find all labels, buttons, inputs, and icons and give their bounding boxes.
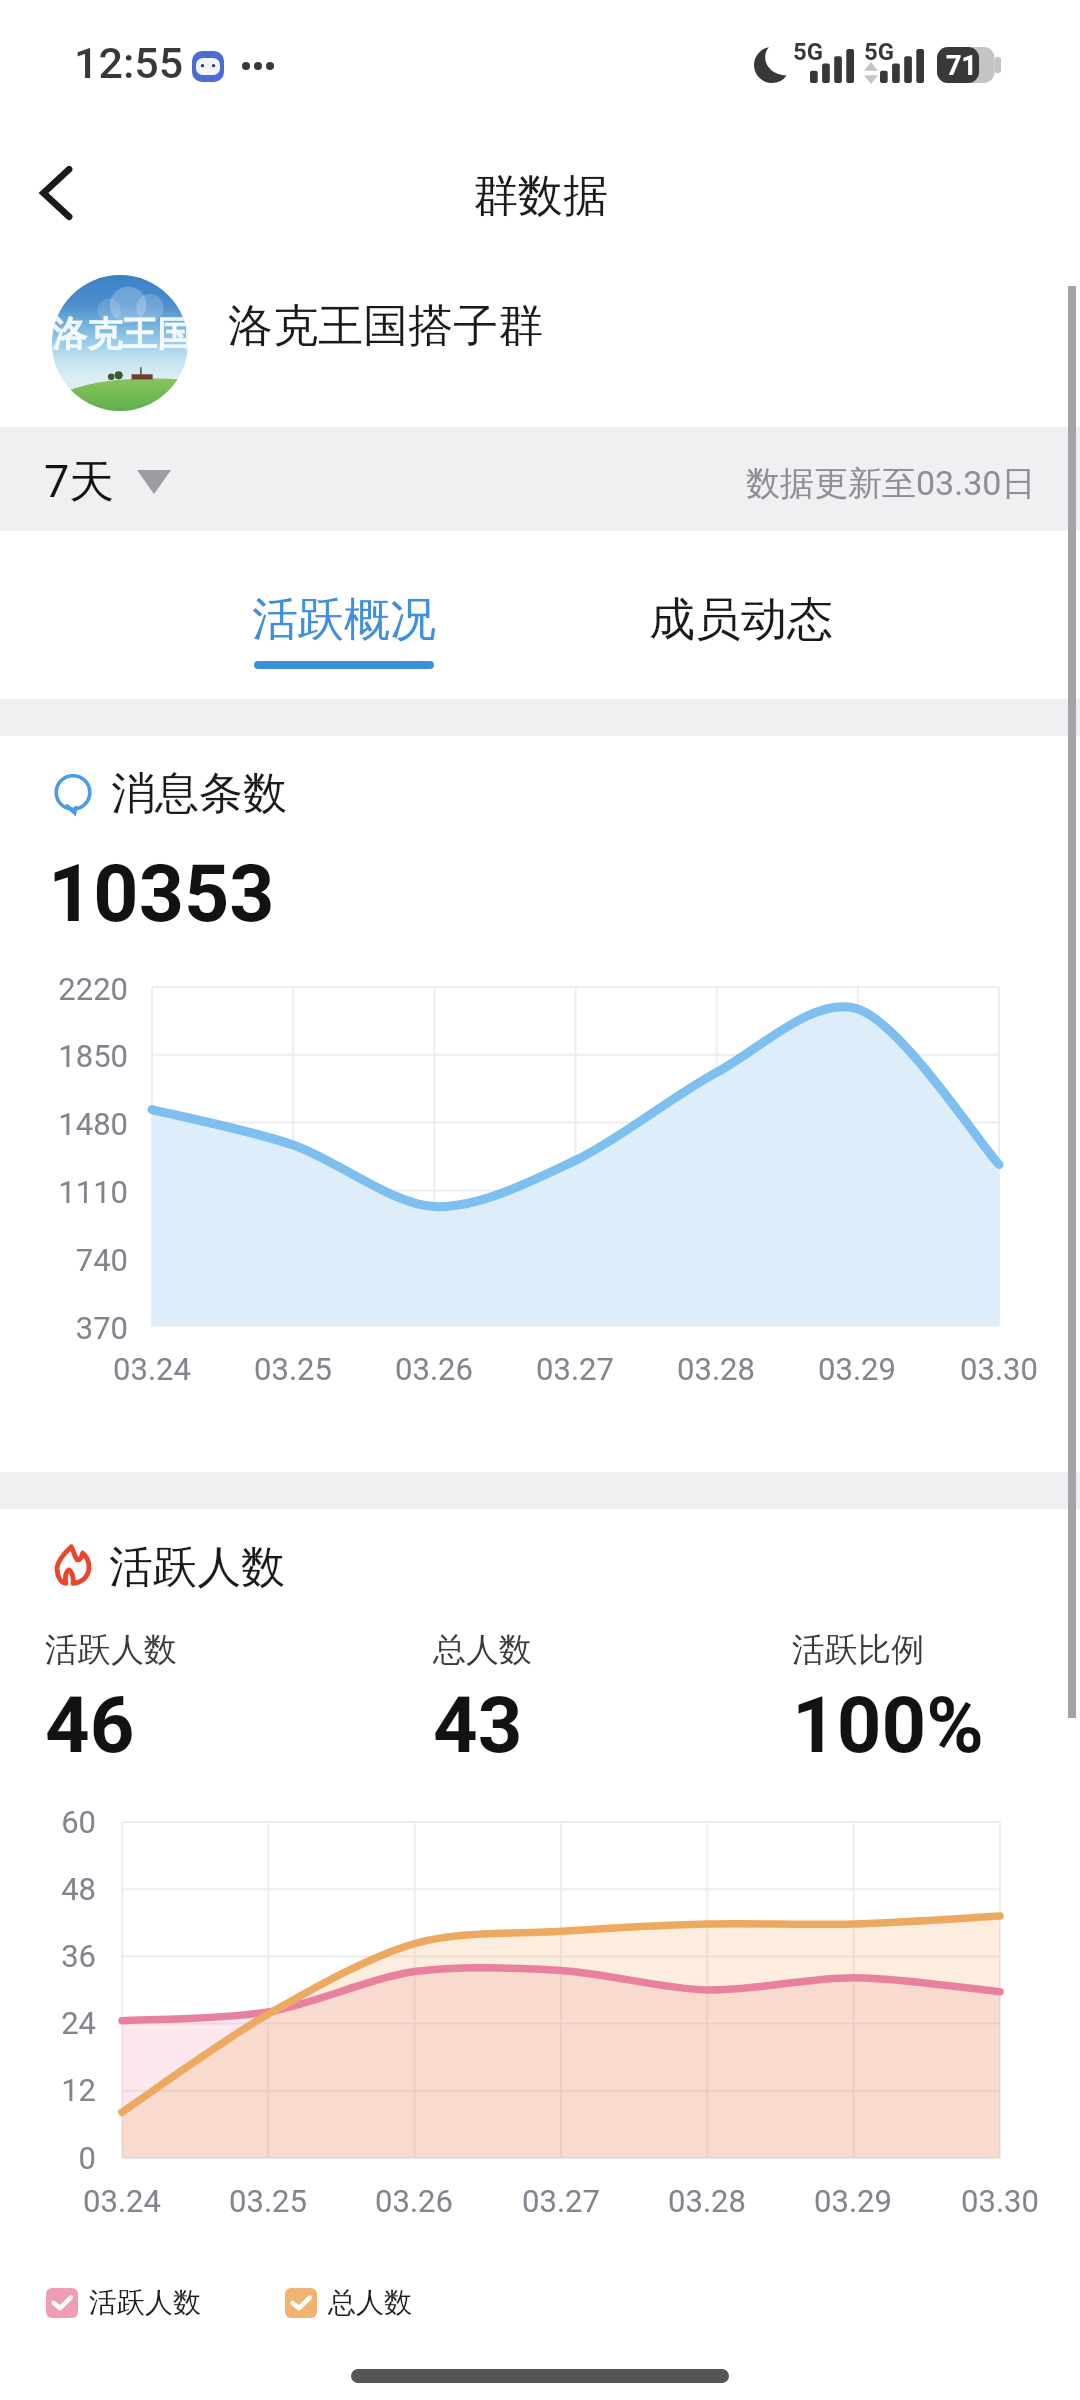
button[interactable]: 总人数 [285,2285,412,2320]
staticText: 46 [45,1680,135,1771]
staticText: 活跃人数 [109,1540,285,1595]
staticText: 7天 [44,454,115,511]
staticText: 03.29 [777,1351,937,1387]
staticText: 03.28 [636,1351,796,1387]
staticText: 总人数 [328,2285,412,2320]
button[interactable]: 活跃人数 [46,2285,201,2320]
staticText: 03.24 [72,1351,232,1387]
staticText: 48 [0,1871,96,1907]
staticText: 740 [0,1242,128,1278]
staticText: 活跃人数 [89,2285,201,2320]
staticText: 03.30 [919,1351,1079,1387]
staticText: 洛克王国搭子群 [228,298,543,355]
staticText: 活跃比例 [792,1629,924,1671]
staticText: 03.27 [495,1351,655,1387]
staticText: 2220 [0,971,128,1007]
staticText: 24 [0,2005,96,2041]
staticText: 03.26 [354,1351,514,1387]
staticText: 1480 [0,1106,128,1142]
staticText: 03.24 [42,2183,202,2219]
staticText: 36 [0,1938,96,1974]
staticText: 1850 [0,1038,128,1074]
staticText: 消息条数 [111,766,287,821]
staticText: 洛克王国 [52,312,188,356]
staticText: 12 [0,2072,96,2108]
staticText: 5G [864,38,895,66]
staticText: 活跃人数 [45,1629,177,1671]
staticText: 数据更新至03.30日 [746,462,1036,505]
staticText: 370 [0,1310,128,1346]
staticText: 1110 [0,1174,128,1210]
button[interactable]: 成员动态 [542,531,942,699]
staticText: 03.27 [481,2183,641,2219]
staticText: 10353 [48,848,275,941]
staticText: 总人数 [433,1629,532,1671]
staticText: 71 [946,50,977,82]
staticText: 03.29 [773,2183,933,2219]
staticText: 03.25 [213,1351,373,1387]
staticText: 活跃概况 [252,591,436,649]
button[interactable]: Back [8,130,118,240]
staticText: 03.26 [334,2183,494,2219]
button[interactable]: 活跃概况 [142,531,542,699]
staticText: 100% [792,1680,984,1771]
staticText: 60 [0,1804,96,1840]
staticText: 03.28 [627,2183,787,2219]
staticText: 0 [0,2140,96,2176]
staticText: 03.25 [188,2183,348,2219]
staticText: 成员动态 [649,591,833,649]
staticText: 03.30 [920,2183,1080,2219]
staticText: 群数据 [473,168,608,225]
staticText: 43 [433,1680,523,1771]
button[interactable]: 7天 [30,433,191,531]
staticText: 5G [793,38,824,66]
staticText: 12:55 [74,38,184,88]
